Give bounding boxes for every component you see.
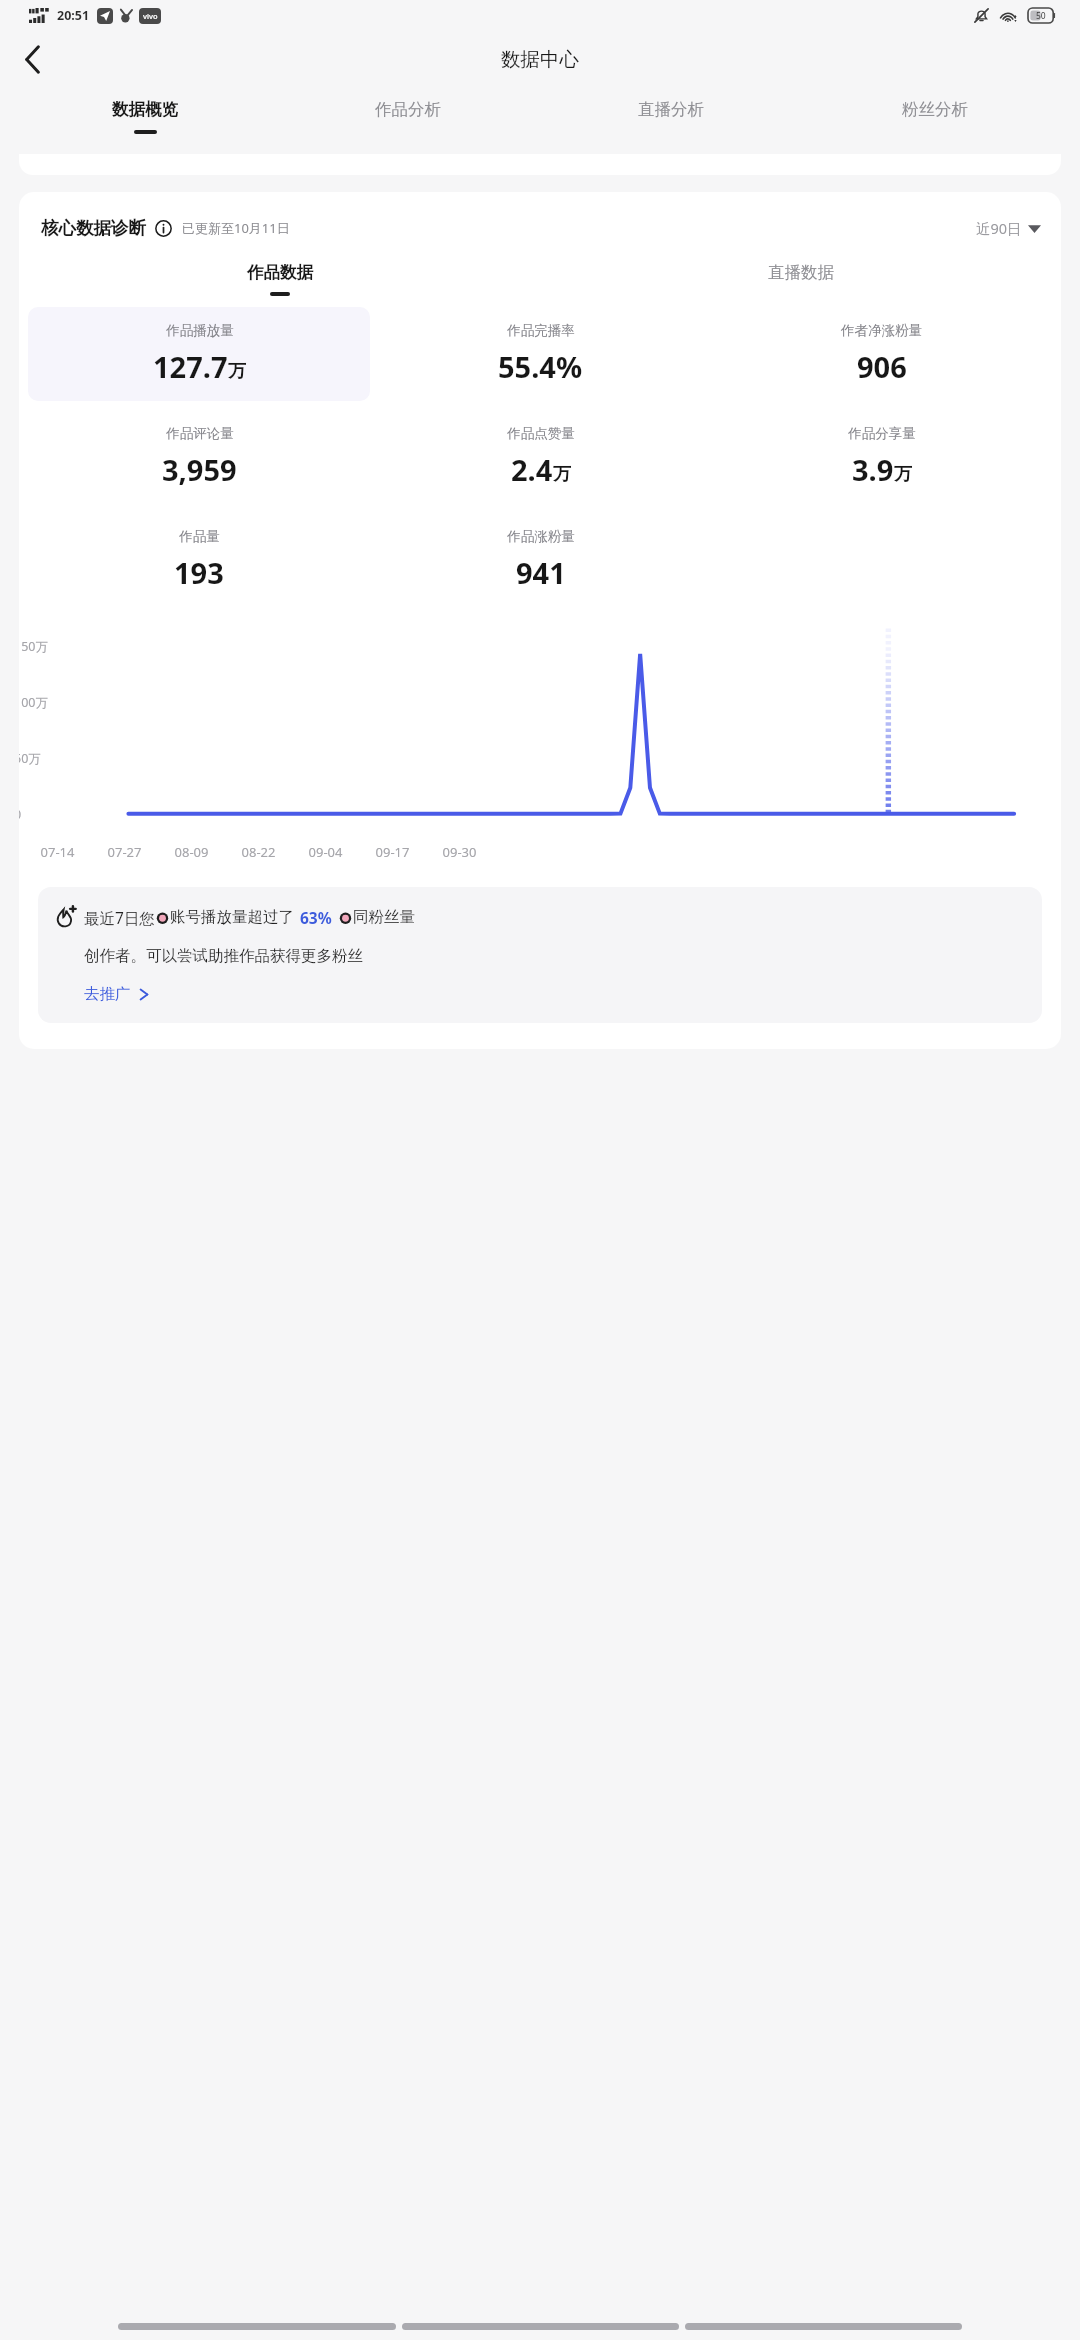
- staticText: 直播数据: [768, 262, 834, 283]
- staticText: 去推广: [84, 984, 131, 1004]
- staticText: 创作者。可以尝试助推作品获得更多粉丝: [84, 946, 363, 966]
- staticText: 作品分享量: [848, 425, 916, 442]
- staticText: 20:51: [57, 7, 90, 24]
- button[interactable]: 作品分析: [276, 88, 539, 130]
- button[interactable]: 去推广: [84, 984, 149, 1004]
- staticText: 193: [174, 553, 224, 592]
- staticText: 直播分析: [638, 99, 704, 120]
- staticText: 127.7: [153, 347, 228, 386]
- button[interactable]: 作品数据: [19, 262, 540, 296]
- staticText: 941: [516, 553, 566, 592]
- staticText: 08-09: [163, 843, 220, 861]
- button[interactable]: 作品分享量: [711, 410, 1052, 504]
- staticText: 作品量: [179, 528, 220, 545]
- staticText: 近90日: [976, 218, 1022, 238]
- button[interactable]: 最近7日您: [38, 887, 1042, 1023]
- button[interactable]: 直播分析: [539, 88, 803, 130]
- staticText: 09-17: [364, 843, 421, 861]
- staticText: 数据概览: [112, 99, 178, 120]
- staticText: 作品分析: [375, 99, 441, 120]
- staticText: 作品完播率: [507, 322, 575, 339]
- staticText: 09-30: [431, 843, 488, 861]
- staticText: 3,959: [162, 450, 237, 489]
- staticText: 万: [894, 463, 912, 486]
- button[interactable]: Back: [9, 35, 57, 83]
- staticText: 作品评论量: [166, 425, 234, 442]
- staticText: 数据中心: [501, 47, 579, 72]
- staticText: 万: [228, 360, 246, 383]
- button[interactable]: 作品涨粉量: [370, 513, 711, 607]
- staticText: 55.4%: [498, 347, 583, 386]
- staticText: 150万: [19, 638, 48, 655]
- staticText: 2.4: [511, 450, 553, 489]
- staticText: 万: [553, 463, 571, 486]
- button[interactable]: 近90日: [976, 218, 1041, 238]
- staticText: 作品播放量: [166, 322, 234, 339]
- staticText: 作者净涨粉量: [841, 322, 922, 339]
- staticText: 作品点赞量: [507, 425, 575, 442]
- staticText: 账号播放量超过了: [170, 907, 294, 927]
- button[interactable]: 作品完播率: [370, 307, 711, 401]
- button[interactable]: 数据概览: [13, 88, 276, 134]
- staticText: 作品涨粉量: [507, 528, 575, 545]
- button[interactable]: 粉丝分析: [803, 88, 1067, 130]
- staticText: 3.9: [852, 450, 894, 489]
- staticText: 0: [19, 806, 22, 823]
- button[interactable]: 数据说明: [153, 218, 174, 239]
- button[interactable]: 作品点赞量: [370, 410, 711, 504]
- staticText: 906: [857, 347, 907, 386]
- staticText: 同粉丝量: [353, 907, 415, 927]
- staticText: 07-14: [29, 843, 86, 861]
- staticText: 100万: [19, 694, 48, 711]
- staticText: vivo: [143, 11, 158, 21]
- staticText: 50万: [19, 750, 41, 767]
- staticText: 作品数据: [247, 262, 313, 283]
- staticText: 09-04: [297, 843, 354, 861]
- button[interactable]: 作品播放量: [28, 307, 370, 401]
- staticText: 07-27: [96, 843, 153, 861]
- button[interactable]: 作品评论量: [28, 410, 370, 504]
- staticText: 50: [1036, 10, 1046, 22]
- staticText: 核心数据诊断: [41, 217, 146, 239]
- button[interactable]: System navigation: [118, 2323, 396, 2330]
- button[interactable]: 作者净涨粉量: [711, 307, 1052, 401]
- staticText: 63%: [300, 907, 332, 928]
- button[interactable]: 直播数据: [540, 262, 1061, 296]
- staticText: 08-22: [230, 843, 287, 861]
- staticText: 已更新至10月11日: [182, 219, 290, 237]
- button[interactable]: 作品量: [28, 513, 370, 607]
- button[interactable]: System navigation: [402, 2323, 679, 2330]
- button[interactable]: System navigation: [685, 2323, 962, 2330]
- staticText: 最近7日您: [84, 907, 155, 928]
- staticText: 粉丝分析: [902, 99, 968, 120]
